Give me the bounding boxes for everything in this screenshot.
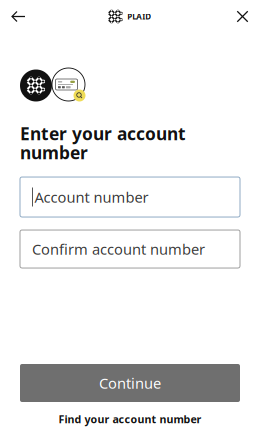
button[interactable]: Back [0,0,36,32]
staticText: PLAID [127,11,151,22]
staticText: Continue [99,373,161,393]
button[interactable]: Continue [20,364,240,402]
staticText: Enter your account number [20,122,186,164]
staticText: Confirm account number [32,239,205,259]
staticText: Account number [34,187,148,207]
button[interactable]: Confirm account number [20,230,240,268]
staticText: Find your account number [58,412,201,426]
button[interactable]: Account number [20,177,240,217]
button[interactable]: Find your account number [20,408,240,430]
button[interactable]: Close [224,0,260,32]
